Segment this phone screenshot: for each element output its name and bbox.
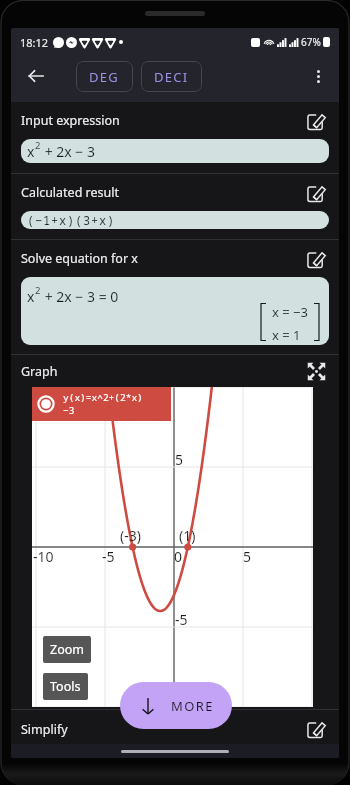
button[interactable]: (−1+x)(3+x) <box>21 211 329 229</box>
staticText: MORE <box>171 697 214 715</box>
staticText: 5 <box>175 450 184 469</box>
staticText: 2 <box>35 284 41 297</box>
staticText: -5 <box>102 547 115 566</box>
button[interactable]: Edit <box>301 178 331 208</box>
staticText: x = 1 <box>272 326 301 341</box>
staticText: (1) <box>179 526 196 545</box>
staticText: 18:12 <box>20 35 49 50</box>
staticText: Graph <box>21 363 58 380</box>
staticText: DECI <box>154 68 189 86</box>
button[interactable]: Back <box>19 59 53 93</box>
staticText: Calculated result <box>21 184 120 201</box>
staticText: 67% <box>301 35 321 49</box>
staticText: Zoom <box>50 641 84 658</box>
button[interactable]: Edit <box>301 244 331 274</box>
staticText: DEG <box>89 68 120 86</box>
staticText: −3 <box>63 404 75 417</box>
staticText: Simplify <box>21 721 68 738</box>
staticText: 0 <box>174 547 183 566</box>
staticText: Input expression <box>21 112 120 129</box>
staticText: y(x)=x^2+(2*x) <box>63 391 143 404</box>
staticText: 2 <box>35 139 41 152</box>
staticText: + 2x − 3 = 0 <box>41 287 119 306</box>
staticText: -5 <box>175 610 188 629</box>
button[interactable]: DECI <box>141 61 202 92</box>
button[interactable]: -10 <box>32 387 313 707</box>
staticText: + 2x − 3 <box>41 142 95 161</box>
button[interactable]: MORE <box>120 682 232 729</box>
staticText: Solve equation for x <box>21 250 138 267</box>
staticText: (−1+x)(3+x) <box>27 212 116 228</box>
staticText: -10 <box>33 547 54 566</box>
button[interactable]: x <box>21 277 329 345</box>
button[interactable]: Zoom <box>43 636 91 663</box>
button[interactable]: More options <box>303 61 333 91</box>
staticText: (-3) <box>120 526 141 545</box>
staticText: x <box>27 142 35 161</box>
staticText: Tools <box>50 678 81 695</box>
staticText: x = −3 <box>272 303 308 321</box>
button[interactable]: Tools <box>43 673 88 700</box>
button[interactable]: Edit <box>301 714 331 744</box>
button[interactable]: x <box>21 139 329 163</box>
button[interactable]: Edit <box>301 106 331 136</box>
button[interactable]: DEG <box>76 61 133 92</box>
staticText: 5 <box>243 547 252 566</box>
button[interactable]: Expand graph <box>301 356 331 386</box>
staticText: x <box>27 287 35 306</box>
